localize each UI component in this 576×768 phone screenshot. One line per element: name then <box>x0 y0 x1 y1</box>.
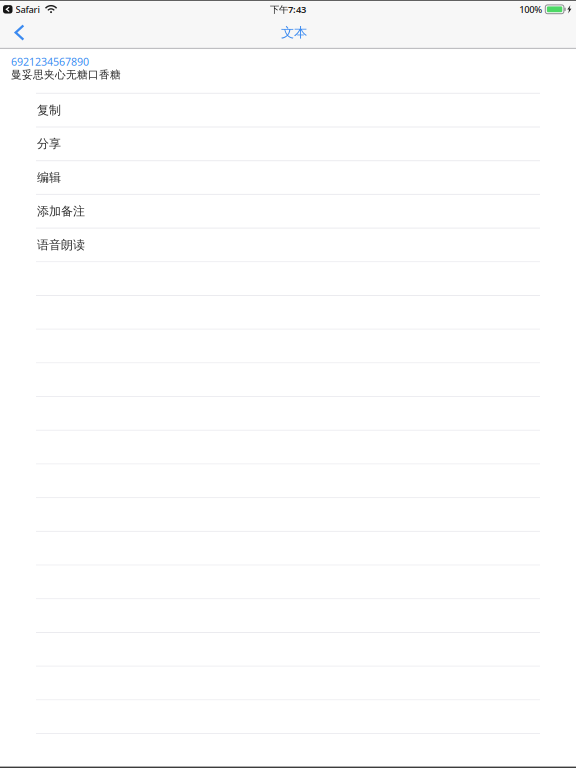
staticText: Safari <box>15 3 40 15</box>
staticText: 文本 <box>281 24 307 41</box>
staticText: 曼妥思夹心无糖口香糖 <box>11 68 121 81</box>
button[interactable]: Back <box>0 17 40 48</box>
staticText: 添加备注 <box>37 204 85 219</box>
staticText: 复制 <box>37 103 61 117</box>
staticText: 编辑 <box>37 170 61 185</box>
staticText: 6921234567890 <box>11 54 89 69</box>
staticText: 语音朗读 <box>37 238 85 252</box>
button[interactable]: 编辑 <box>0 161 576 195</box>
staticText: 下午7:43 <box>270 3 306 15</box>
button[interactable]: 6921234567890 <box>11 55 89 69</box>
staticText: 分享 <box>37 136 61 151</box>
button[interactable]: 语音朗读 <box>0 229 576 262</box>
button[interactable]: 复制 <box>0 94 576 127</box>
button[interactable]: 添加备注 <box>0 195 576 229</box>
staticText: 100% <box>519 3 542 15</box>
button[interactable]: Back to Safari <box>0 1 42 17</box>
button[interactable]: 分享 <box>0 127 576 161</box>
